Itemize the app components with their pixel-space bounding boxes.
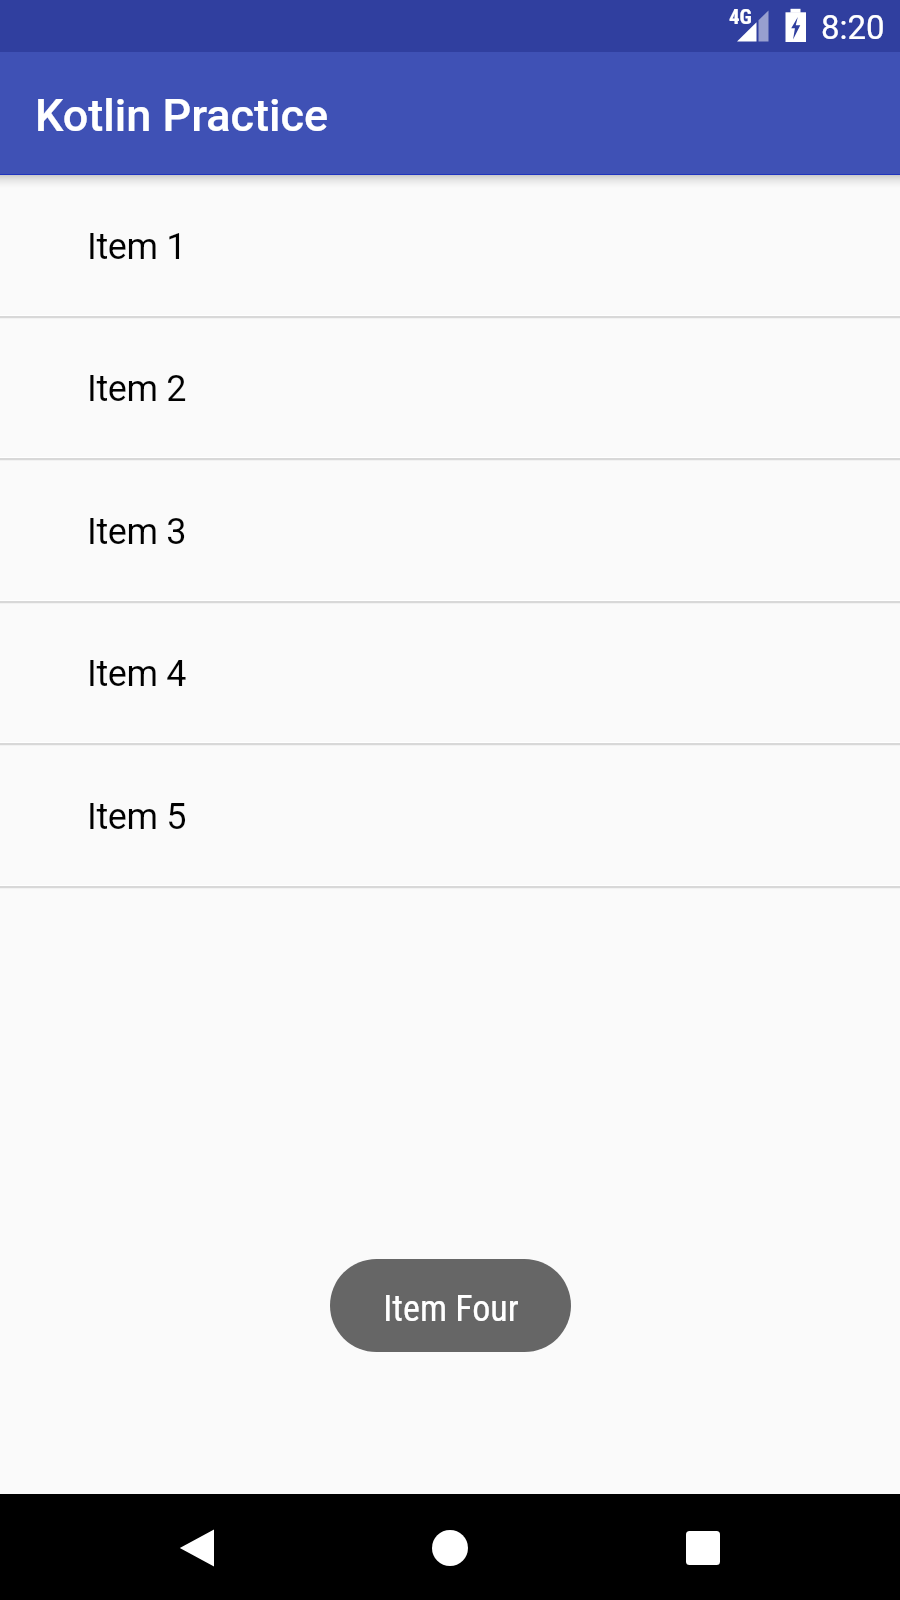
button[interactable]: Recents	[643, 1494, 763, 1600]
staticText: Item 5	[87, 796, 186, 838]
staticText: Item 3	[87, 511, 186, 553]
button[interactable]: Item 4	[0, 603, 900, 742]
staticText: Kotlin Practice	[35, 89, 329, 142]
staticText: Item Four	[383, 1288, 519, 1330]
button[interactable]: Home	[390, 1494, 510, 1600]
button[interactable]: Item 2	[0, 318, 900, 457]
staticText: 4G	[729, 5, 752, 30]
button[interactable]: Item Four	[330, 1259, 571, 1352]
button[interactable]: Back	[137, 1494, 257, 1600]
staticText: Item 4	[87, 653, 186, 695]
staticText: 8:20	[821, 8, 885, 47]
button[interactable]: Item 1	[0, 176, 900, 315]
button[interactable]: Item 5	[0, 746, 900, 885]
staticText: Item 2	[87, 368, 186, 410]
button[interactable]: Item 3	[0, 461, 900, 600]
staticText: Item 1	[87, 226, 186, 268]
